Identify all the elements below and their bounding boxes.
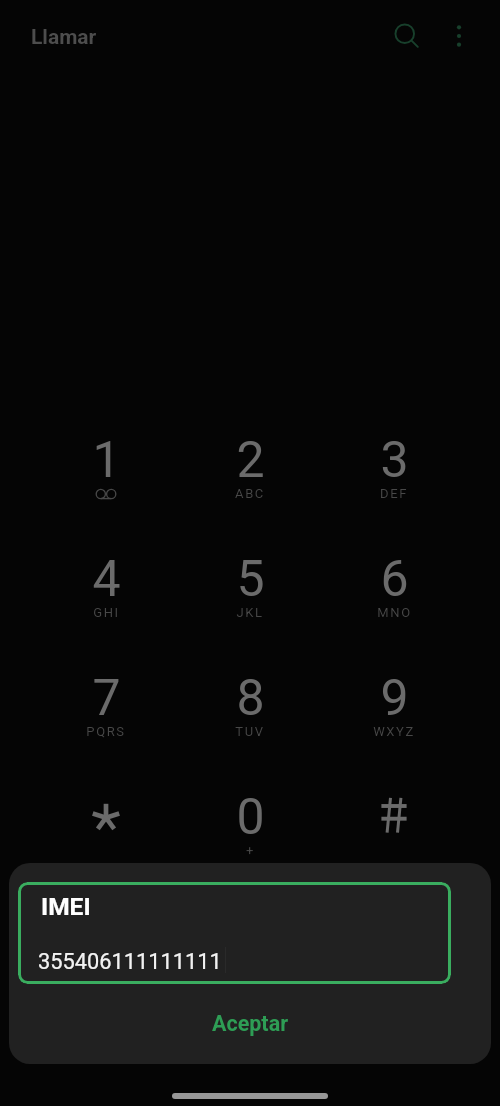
button[interactable]: 1 [41, 406, 171, 516]
button[interactable]: 4 [41, 525, 171, 635]
button[interactable]: Buscar [385, 14, 425, 54]
staticText: 7 [92, 669, 121, 728]
button[interactable]: 0 [185, 763, 315, 873]
button[interactable]: 8 [185, 644, 315, 754]
button[interactable]: 6 [329, 525, 459, 635]
button[interactable] [41, 763, 171, 873]
staticText: Aceptar [212, 1011, 289, 1036]
staticText: JKL [236, 605, 264, 620]
staticText: MNO [377, 605, 412, 620]
button[interactable]: IMEI [18, 882, 451, 984]
staticText: 2 [236, 431, 265, 490]
staticText: Llamar [31, 25, 97, 50]
button[interactable]: 2 [185, 406, 315, 516]
staticText: PQRS [86, 724, 126, 739]
staticText: 6 [380, 550, 409, 609]
staticText: GHI [93, 605, 120, 620]
staticText: 8 [236, 669, 265, 728]
staticText: 1 [92, 431, 121, 490]
staticText: 355406111111111 [38, 949, 222, 975]
button[interactable]: 3 [329, 406, 459, 516]
staticText: TUV [235, 724, 265, 739]
staticText: 4 [92, 550, 121, 609]
staticText: 5 [236, 550, 265, 609]
staticText: IMEI [41, 892, 91, 921]
staticText: WXYZ [373, 724, 415, 739]
button[interactable]: 5 [185, 525, 315, 635]
button[interactable]: Más opciones [439, 16, 479, 56]
staticText: 0 [236, 788, 265, 847]
button[interactable]: Aceptar [150, 1001, 350, 1045]
staticText: DEF [380, 486, 408, 501]
staticText: 9 [380, 669, 409, 728]
staticText: + [246, 843, 255, 858]
button[interactable]: 9 [329, 644, 459, 754]
staticText: ABC [235, 486, 265, 501]
button[interactable]: 7 [41, 644, 171, 754]
button[interactable] [329, 763, 459, 873]
staticText: 3 [380, 431, 409, 490]
